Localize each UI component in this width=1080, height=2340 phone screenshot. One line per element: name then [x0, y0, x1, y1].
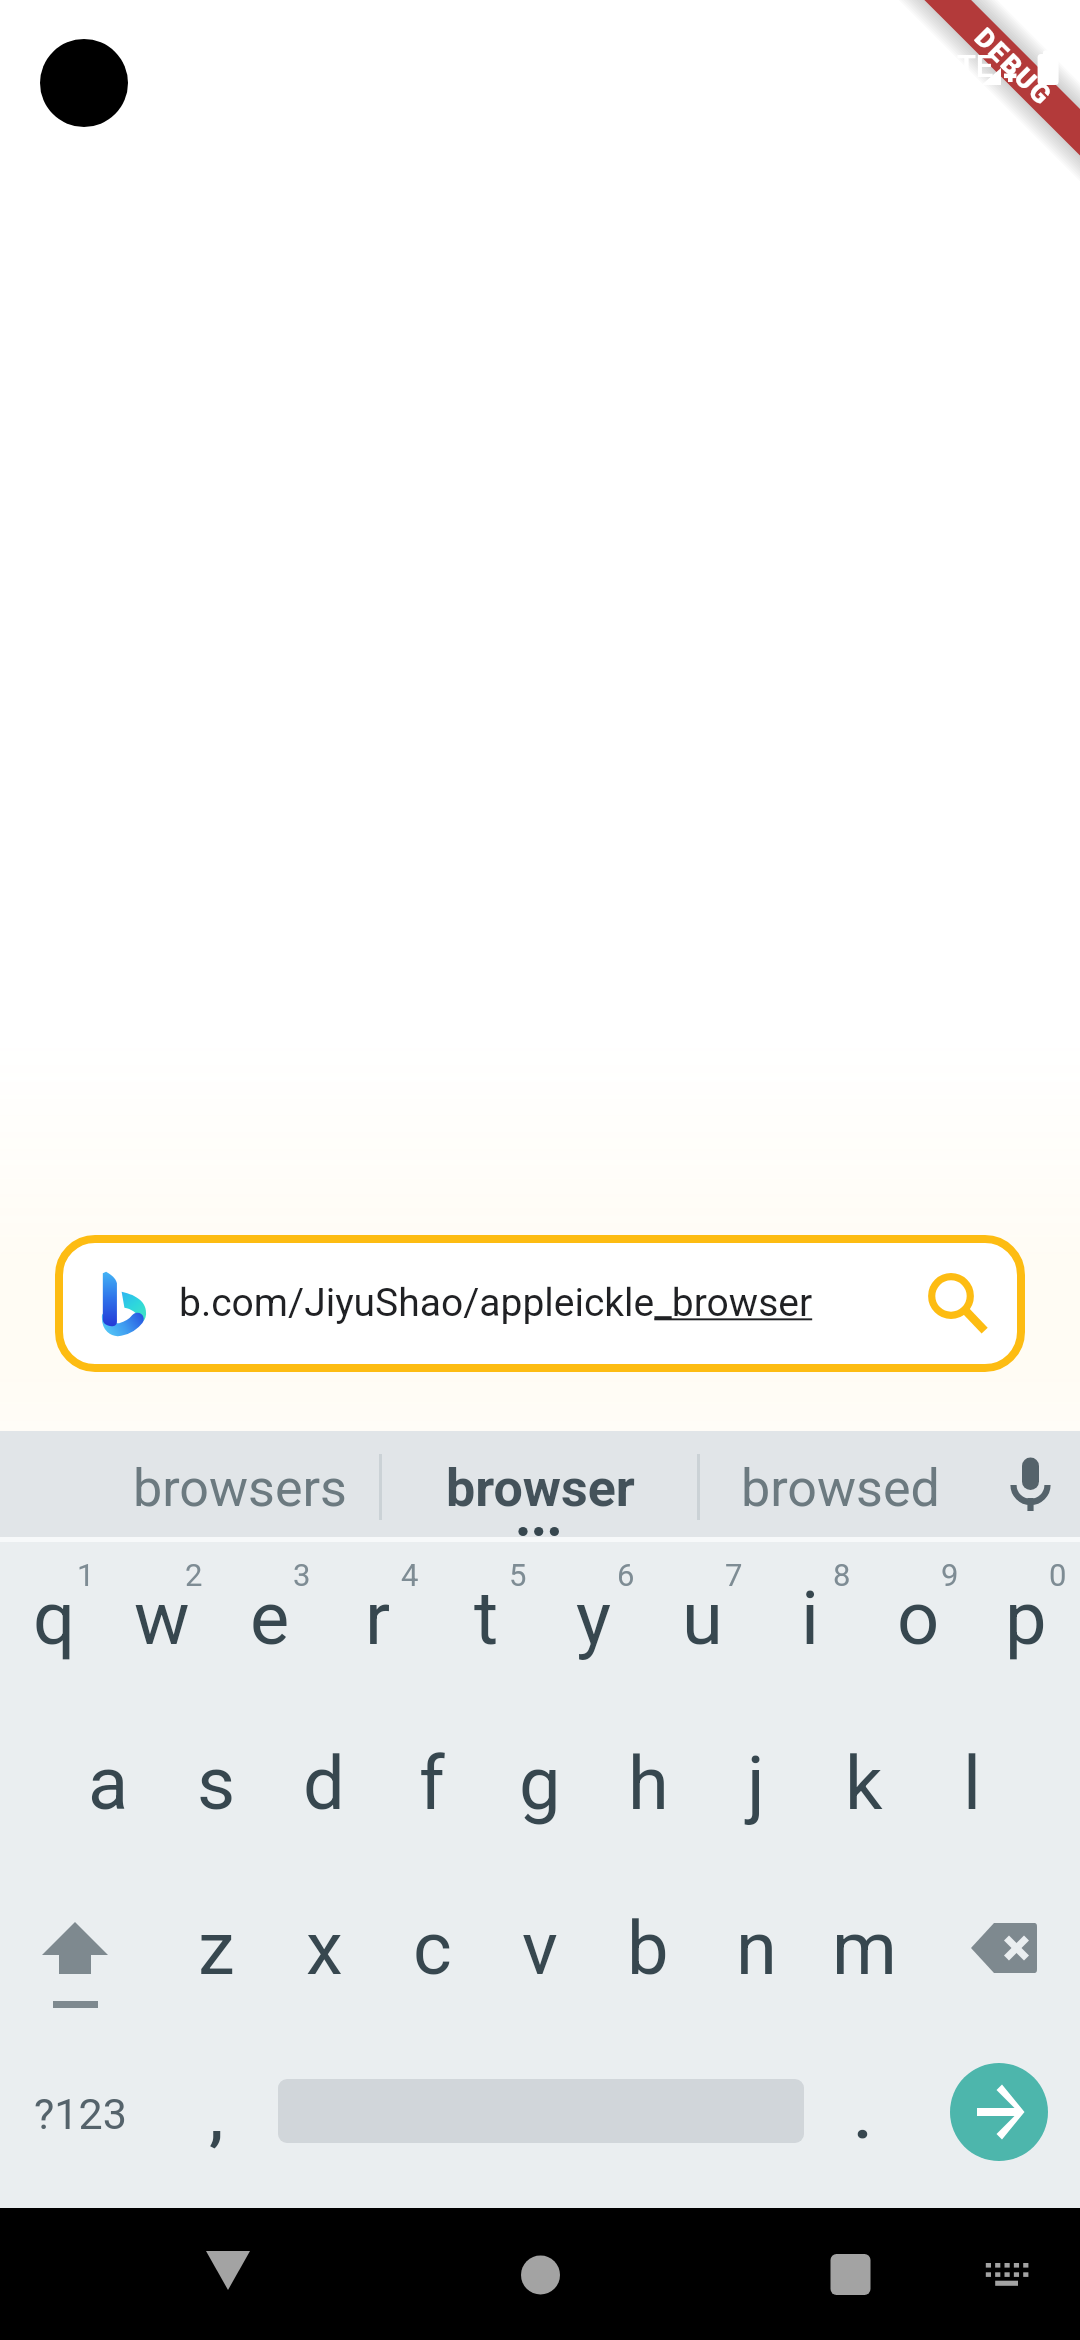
button[interactable] [270, 1702, 378, 1862]
staticText: 8 [833, 1557, 851, 1593]
button[interactable] [486, 1702, 594, 1862]
button[interactable] [162, 1862, 270, 2022]
button[interactable] [0, 2022, 162, 2182]
button[interactable] [594, 1862, 702, 2022]
staticText: b [627, 1905, 669, 1992]
staticText: ?123 [34, 2089, 127, 2139]
staticText: 6 [617, 1557, 635, 1593]
staticText: browser [446, 1458, 635, 1519]
staticText: c [413, 1905, 452, 1992]
staticText: i [801, 1575, 819, 1662]
button[interactable]: Home [475, 2208, 605, 2340]
button[interactable] [864, 1542, 972, 1702]
button[interactable] [270, 1862, 378, 2022]
button[interactable]: Backspace [918, 1862, 1080, 2022]
staticText: 7 [725, 1557, 743, 1593]
staticText: k [845, 1740, 883, 1827]
button[interactable]: Shift [0, 1862, 162, 2022]
button[interactable] [594, 1702, 702, 1862]
button[interactable] [810, 1862, 918, 2022]
button[interactable] [108, 1542, 216, 1702]
button[interactable] [486, 1862, 594, 2022]
button[interactable]: Recents [786, 2208, 916, 2340]
staticText: r [365, 1575, 391, 1662]
staticText: e [250, 1575, 290, 1662]
button[interactable] [702, 1702, 810, 1862]
button[interactable] [54, 1702, 162, 1862]
staticText: x [306, 1905, 343, 1992]
staticText: q [33, 1575, 76, 1662]
staticText: g [519, 1740, 561, 1827]
staticText: w [134, 1575, 190, 1662]
staticText: 9 [941, 1557, 959, 1593]
button[interactable] [162, 1702, 270, 1862]
staticText: browsers [133, 1458, 347, 1519]
button[interactable] [648, 1542, 756, 1702]
staticText: h [628, 1740, 669, 1827]
button[interactable]: Voice input [980, 1431, 1080, 1537]
button[interactable] [55, 1235, 1025, 1372]
staticText: d [303, 1740, 345, 1827]
button[interactable]: browsers [100, 1431, 380, 1537]
staticText: z [198, 1905, 235, 1992]
staticText: p [1005, 1575, 1047, 1662]
staticText: browsed [741, 1458, 940, 1519]
staticText: 0 [1049, 1557, 1067, 1593]
button[interactable]: Keyboard [946, 2208, 1066, 2340]
button[interactable] [378, 1862, 486, 2022]
staticText: DEBUG [969, 21, 1059, 112]
staticText: . [854, 2082, 872, 2152]
button[interactable] [324, 1542, 432, 1702]
staticText: m [832, 1905, 897, 1992]
staticText: o [897, 1575, 940, 1662]
staticText: s [197, 1740, 236, 1827]
staticText: 4 [401, 1557, 419, 1593]
staticText: 3 [293, 1557, 311, 1593]
button[interactable]: Go [950, 2063, 1048, 2161]
button[interactable] [540, 1542, 648, 1702]
staticText: a [88, 1740, 129, 1827]
staticText: 2 [185, 1557, 203, 1593]
staticText: 5 [509, 1557, 527, 1593]
button[interactable] [810, 2022, 918, 2182]
staticText: b.com/JiyuShao/appleickle_browser [179, 1280, 813, 1326]
staticText: f [419, 1740, 445, 1827]
staticText: v [522, 1905, 558, 1992]
button[interactable]: browser [382, 1431, 698, 1537]
staticText: y [576, 1575, 612, 1662]
staticText: t [474, 1575, 499, 1662]
staticText: j [747, 1740, 765, 1827]
button[interactable] [918, 1702, 1026, 1862]
button[interactable] [972, 1542, 1080, 1702]
staticText: , [209, 2082, 224, 2152]
button[interactable] [0, 1542, 108, 1702]
staticText: LTE [944, 48, 994, 84]
button[interactable] [162, 2022, 270, 2182]
staticText: u [682, 1575, 723, 1662]
button[interactable]: Back [163, 2208, 293, 2340]
button[interactable] [810, 1702, 918, 1862]
button[interactable]: Search [915, 1260, 1005, 1350]
button[interactable] [702, 1862, 810, 2022]
staticText: l [963, 1740, 981, 1827]
button[interactable] [216, 1542, 324, 1702]
button[interactable]: browsed [700, 1431, 980, 1537]
staticText: 1 [77, 1557, 95, 1593]
button[interactable] [432, 1542, 540, 1702]
button[interactable] [378, 1702, 486, 1862]
staticText: n [736, 1905, 777, 1992]
button[interactable] [756, 1542, 864, 1702]
